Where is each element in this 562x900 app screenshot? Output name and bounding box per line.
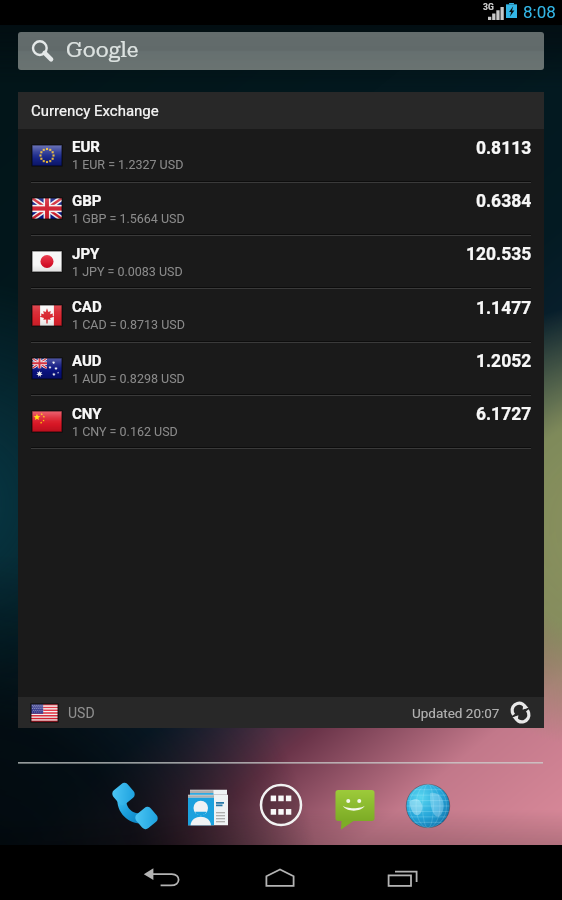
button[interactable]: GBP (18, 183, 544, 236)
staticText: 1 AUD = 0.8298 USD (72, 371, 185, 386)
staticText: 6.1727 (476, 404, 532, 425)
button[interactable]: CNY (18, 396, 544, 449)
button[interactable]: Apps (253, 777, 309, 833)
button[interactable]: Refresh (510, 702, 531, 723)
staticText: USD (68, 705, 95, 721)
staticText: 1.1477 (476, 298, 532, 319)
staticText: 1 JPY = 0.0083 USD (72, 264, 183, 279)
staticText: Updated 20:07 (412, 705, 500, 721)
staticText: 8:08 (523, 2, 556, 22)
button[interactable]: Google (18, 32, 544, 70)
staticText: 1.2052 (476, 351, 532, 372)
button[interactable]: Recents (363, 845, 443, 900)
staticText: Currency Exchange (31, 102, 159, 120)
button[interactable]: Phone (106, 777, 162, 833)
staticText: 0.8113 (476, 138, 532, 159)
button[interactable]: AUD (18, 343, 544, 396)
button[interactable]: Home (240, 845, 320, 900)
button[interactable]: Currency Exchange (18, 92, 544, 129)
staticText: GBP (72, 192, 102, 210)
button[interactable]: JPY (18, 236, 544, 289)
staticText: 1 EUR = 1.2327 USD (72, 157, 184, 172)
staticText: 1 CAD = 0.8713 USD (72, 317, 185, 332)
staticText: 3G (483, 2, 494, 12)
staticText: 120.535 (466, 244, 532, 265)
staticText: Google (66, 38, 139, 63)
button[interactable]: EUR (18, 129, 544, 183)
staticText: CAD (72, 298, 102, 316)
button[interactable]: Back (123, 845, 203, 900)
button[interactable]: People (180, 777, 236, 833)
staticText: 1 CNY = 0.162 USD (72, 424, 178, 439)
button[interactable]: Messaging (327, 777, 383, 833)
staticText: 1 GBP = 1.5664 USD (72, 211, 185, 226)
staticText: 0.6384 (476, 191, 532, 212)
button[interactable]: Browser (400, 777, 456, 833)
staticText: JPY (72, 245, 100, 263)
button[interactable]: CAD (18, 289, 544, 343)
staticText: AUD (72, 352, 102, 370)
staticText: CNY (72, 405, 102, 423)
staticText: EUR (72, 138, 100, 156)
